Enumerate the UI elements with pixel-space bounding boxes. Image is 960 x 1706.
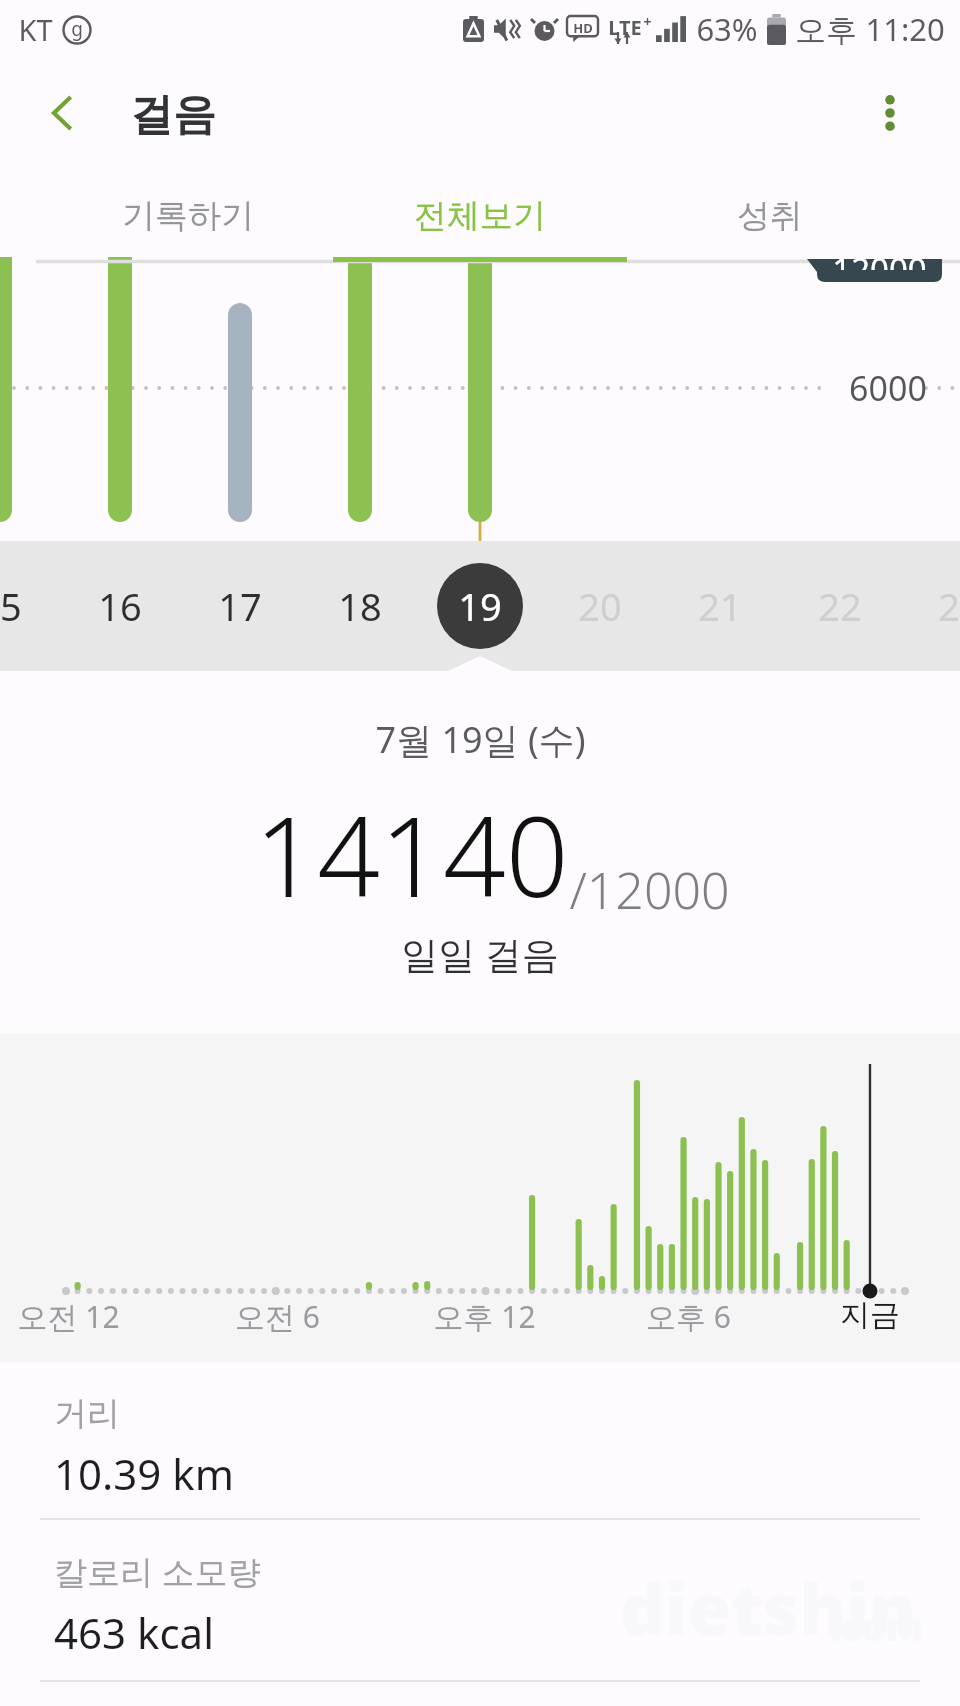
staticText: 16: [98, 580, 142, 632]
staticText: 오전 6: [235, 1296, 320, 1337]
staticText: +: [643, 12, 652, 31]
button[interactable]: 성취: [620, 168, 920, 257]
staticText: /12000: [569, 856, 730, 924]
button[interactable]: 거리: [0, 1362, 960, 1518]
staticText: 22: [818, 580, 862, 632]
staticText: 칼로리 소모량: [54, 1549, 261, 1594]
button[interactable]: 칼로리 소모량: [0, 1520, 960, 1680]
button[interactable]: 20: [540, 541, 660, 671]
button[interactable]: More options: [848, 71, 932, 155]
staticText: 6000: [849, 365, 927, 411]
staticText: 63%: [696, 8, 758, 50]
staticText: 지금: [840, 1296, 900, 1334]
staticText: 오후 6: [646, 1296, 731, 1337]
staticText: 10.39 km: [54, 1445, 234, 1502]
staticText: 걸음: [130, 88, 216, 142]
staticText: 기록하기: [122, 195, 254, 237]
button[interactable]: 15: [0, 541, 60, 671]
staticText: 성취: [737, 195, 803, 237]
button[interactable]: 17: [180, 541, 300, 671]
staticText: 14140: [254, 779, 569, 929]
button[interactable]: 18: [300, 541, 420, 671]
staticText: 19: [458, 580, 502, 632]
staticText: LTE: [608, 14, 642, 41]
staticText: KT: [18, 10, 53, 49]
button[interactable]: 16: [60, 541, 180, 671]
staticText: 오후 12: [433, 1296, 536, 1337]
staticText: 오후 11:20: [795, 8, 945, 50]
button[interactable]: 23: [900, 541, 960, 671]
staticText: 18: [338, 580, 382, 632]
staticText: 일일 걸음: [401, 928, 559, 979]
staticText: 463 kcal: [54, 1604, 214, 1661]
button[interactable]: 22: [780, 541, 900, 671]
button[interactable]: 19: [420, 541, 540, 671]
staticText: 전체보기: [414, 195, 546, 237]
staticText: 20: [578, 580, 622, 632]
staticText: 12000: [832, 259, 927, 270]
staticText: 17: [218, 580, 262, 632]
staticText: 23: [938, 580, 960, 632]
staticText: 거리: [54, 1393, 120, 1435]
staticText: 7월 19일 (수): [375, 715, 586, 764]
staticText: HD: [573, 19, 593, 37]
button[interactable]: 기록하기: [38, 168, 338, 257]
staticText: g: [71, 16, 83, 42]
button[interactable]: 21: [660, 541, 780, 671]
button[interactable]: Back: [22, 71, 106, 155]
button[interactable]: 전체보기: [330, 168, 630, 257]
staticText: 15: [0, 580, 22, 632]
staticText: 오전 12: [17, 1296, 120, 1337]
staticText: 21: [698, 580, 742, 632]
